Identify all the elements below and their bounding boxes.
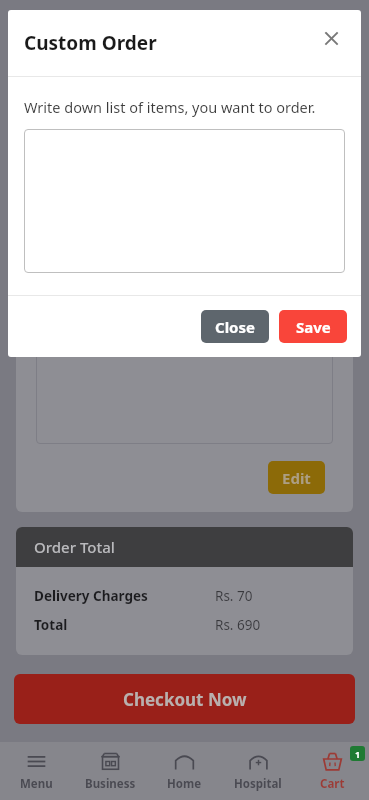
staticText: Cart bbox=[320, 776, 345, 792]
staticText: Save bbox=[296, 317, 331, 337]
button[interactable]: Order items input field bbox=[24, 129, 345, 273]
staticText: 1 bbox=[355, 748, 361, 760]
button[interactable]: Close bbox=[201, 310, 269, 343]
button[interactable]: Business bbox=[73, 742, 147, 800]
button[interactable]: Cart bbox=[295, 742, 369, 800]
staticText: Total bbox=[34, 616, 68, 634]
staticText: Delivery Charges bbox=[34, 587, 148, 605]
staticText: Home bbox=[167, 776, 202, 792]
button[interactable]: Home bbox=[147, 742, 221, 800]
button[interactable]: Close dialog bbox=[315, 22, 347, 54]
staticText: Order Total bbox=[34, 537, 115, 557]
staticText: Rs. 70 bbox=[215, 587, 253, 605]
staticText: Close bbox=[215, 317, 255, 337]
staticText: Custom Order bbox=[24, 30, 157, 56]
staticText: Rs. 690 bbox=[215, 616, 261, 634]
staticText: Menu bbox=[20, 776, 53, 792]
staticText: Business bbox=[85, 776, 136, 792]
staticText: Edit bbox=[282, 468, 311, 488]
staticText: Hospital bbox=[234, 776, 282, 792]
button[interactable]: Save bbox=[279, 310, 347, 343]
button[interactable]: Checkout Now bbox=[14, 674, 355, 724]
button[interactable]: Hospital bbox=[221, 742, 295, 800]
staticText: Checkout Now bbox=[123, 688, 247, 711]
button[interactable]: Edit bbox=[268, 461, 325, 494]
staticText: Write down list of items, you want to or… bbox=[24, 97, 316, 117]
button[interactable]: Menu bbox=[0, 742, 73, 800]
